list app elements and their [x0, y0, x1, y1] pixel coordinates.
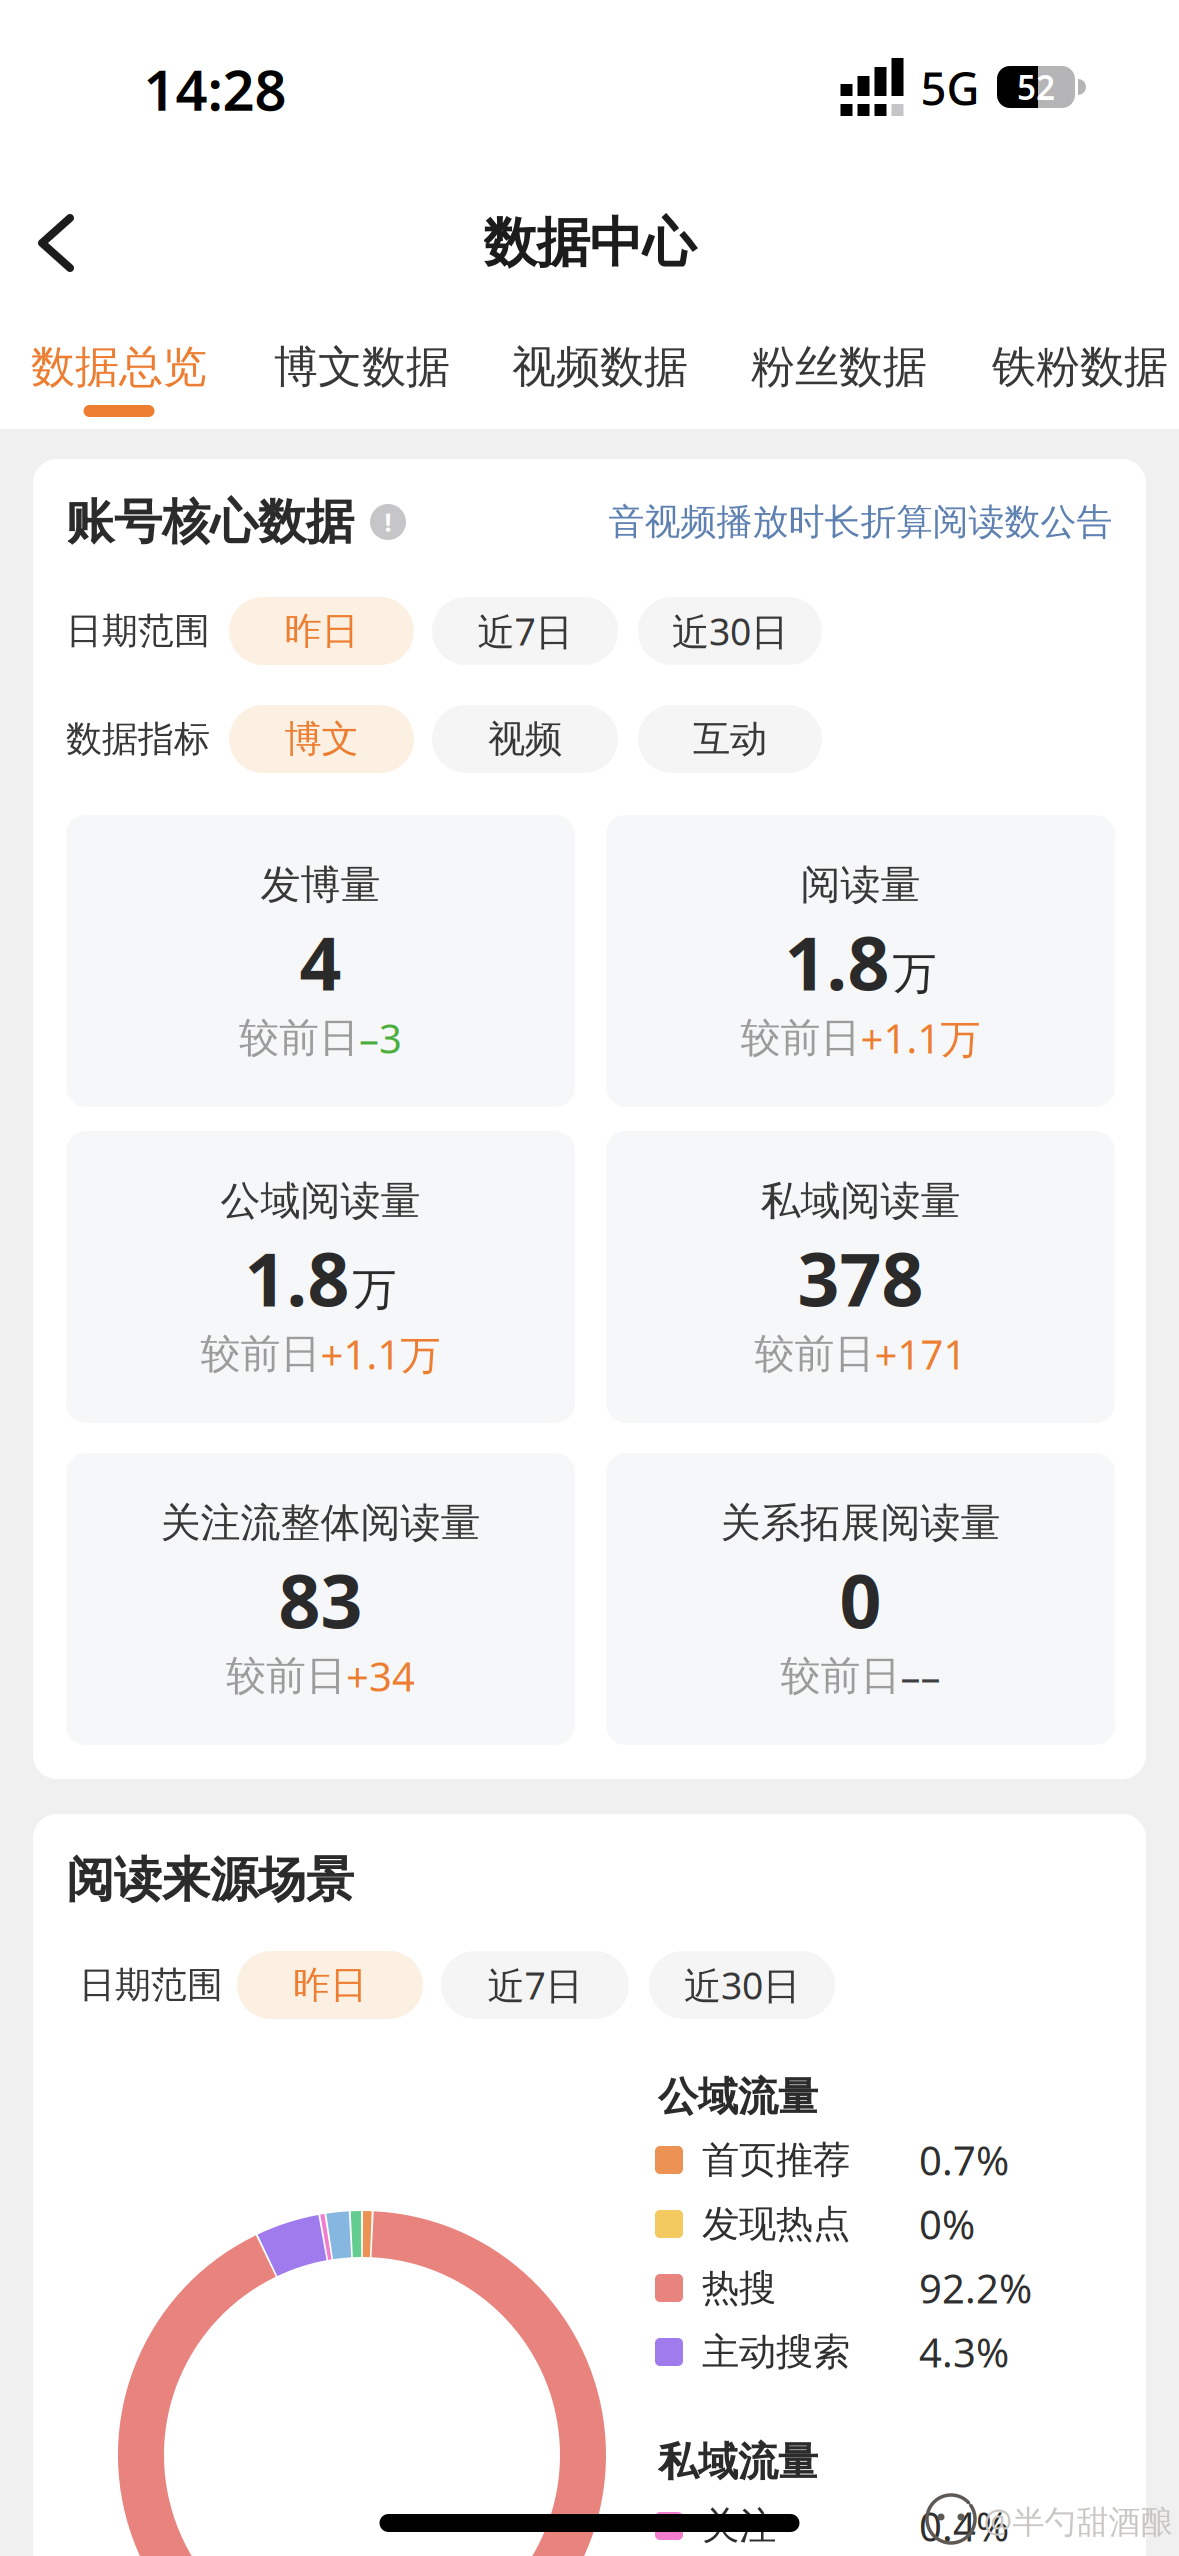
staticText: 万	[892, 947, 936, 1001]
staticText: 日期范围	[66, 609, 210, 653]
staticText: 首页推荐	[702, 2137, 850, 2183]
staticText: 0.4%	[919, 2499, 1009, 2552]
staticText: –3	[359, 1011, 402, 1064]
staticText: 私域流量	[658, 2437, 818, 2486]
staticText: 关注流整体阅读量	[160, 1498, 480, 1547]
button[interactable]: 昨日	[237, 1951, 423, 2019]
staticText: 主动搜索	[702, 2329, 850, 2375]
staticText: 公域流量	[658, 2072, 818, 2121]
staticText: 粉丝数据	[751, 340, 927, 394]
staticText: 14:28	[143, 52, 286, 126]
button[interactable]: 近7日	[441, 1951, 629, 2019]
staticText: 发博量	[260, 860, 380, 909]
button[interactable]: 视频数据	[512, 330, 688, 404]
staticText: 52	[1017, 65, 1055, 109]
staticText: 1.8	[244, 1229, 349, 1327]
button[interactable]: 互动	[638, 705, 822, 773]
staticText: 近30日	[684, 1960, 800, 2010]
staticText: 近7日	[487, 1960, 582, 2010]
staticText: 较前日	[740, 1013, 860, 1062]
staticText: @半勺甜酒酿	[983, 2500, 1172, 2542]
staticText: 较前日	[226, 1651, 346, 1700]
staticText: 博文数据	[274, 340, 450, 394]
button[interactable]: 博文数据	[274, 330, 450, 404]
staticText: ––	[900, 1649, 940, 1702]
staticText: 日期范围	[79, 1963, 223, 2007]
button[interactable]: 数据总览	[31, 330, 207, 404]
staticText: 数据中心	[483, 210, 695, 276]
button[interactable]: 铁粉数据	[992, 330, 1168, 404]
staticText: 阅读来源场景	[66, 1850, 354, 1909]
staticText: 铁粉数据	[992, 340, 1168, 394]
staticText: 5G	[920, 58, 979, 118]
staticText: 昨日	[284, 608, 358, 654]
button[interactable]: 粉丝数据	[751, 330, 927, 404]
staticText: 4.3%	[919, 2325, 1009, 2378]
staticText: 83	[278, 1551, 362, 1649]
button[interactable]: 昨日	[229, 597, 414, 665]
staticText: 公域阅读量	[220, 1176, 420, 1225]
staticText: 较前日	[239, 1013, 359, 1062]
staticText: 0.7%	[919, 2133, 1009, 2186]
staticText: 热搜	[702, 2265, 776, 2311]
staticText: 0	[839, 1551, 881, 1649]
staticText: 视频数据	[512, 340, 688, 394]
staticText: 万	[352, 1263, 396, 1317]
staticText: 0%	[919, 2197, 975, 2250]
staticText: 音视频播放时长折算阅读数公告	[608, 500, 1112, 544]
staticText: 较前日	[780, 1651, 900, 1700]
staticText: +34	[346, 1649, 415, 1702]
staticText: 私域阅读量	[760, 1176, 960, 1225]
staticText: 4	[299, 913, 341, 1011]
staticText: 博文	[284, 716, 358, 762]
staticText: 1.8	[784, 913, 889, 1011]
button[interactable]: 返回	[20, 200, 92, 286]
button[interactable]: 近30日	[638, 597, 822, 665]
staticText: 近7日	[477, 606, 572, 656]
staticText: 数据指标	[66, 717, 210, 761]
staticText: 昨日	[293, 1962, 367, 2008]
staticText: 92.2%	[919, 2261, 1032, 2314]
staticText: 互动	[693, 716, 767, 762]
staticText: +1.1万	[860, 1011, 980, 1064]
staticText: 较前日	[754, 1329, 874, 1378]
staticText: 视频	[488, 716, 562, 762]
staticText: +171	[874, 1327, 966, 1380]
button[interactable]: 视频	[432, 705, 618, 773]
staticText: 数据总览	[31, 340, 207, 394]
staticText: 关系拓展阅读量	[720, 1498, 1000, 1547]
staticText: 378	[797, 1229, 923, 1327]
button[interactable]: 说明	[364, 498, 412, 546]
staticText: 阅读量	[800, 860, 920, 909]
staticText: +1.1万	[320, 1327, 440, 1380]
staticText: 关注	[702, 2503, 776, 2549]
staticText: 账号核心数据	[66, 492, 354, 551]
staticText: 较前日	[200, 1329, 320, 1378]
button[interactable]: 近30日	[649, 1951, 835, 2019]
button[interactable]: 近7日	[432, 597, 618, 665]
staticText: 发现热点	[702, 2201, 850, 2247]
button[interactable]: 博文	[229, 705, 414, 773]
staticText: 近30日	[672, 606, 788, 656]
staticText: !	[384, 505, 391, 539]
button[interactable]: 音视频播放时长折算阅读数公告	[608, 492, 1112, 552]
